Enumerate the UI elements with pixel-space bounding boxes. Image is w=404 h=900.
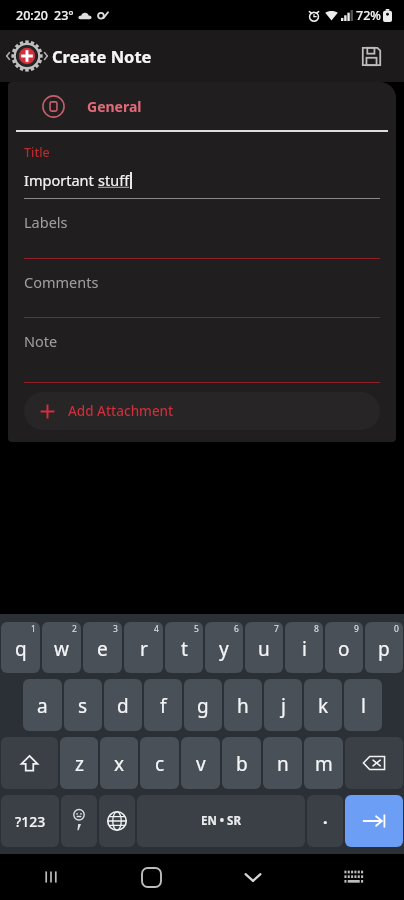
- button[interactable]: v: [181, 737, 220, 789]
- button[interactable]: s: [64, 679, 102, 731]
- staticText: Create Note: [52, 45, 152, 67]
- staticText: p: [378, 636, 390, 662]
- staticText: n: [277, 751, 289, 777]
- staticText: c: [155, 751, 165, 777]
- button[interactable]: Important: [24, 170, 380, 190]
- button[interactable]: Hide keyboard: [202, 854, 303, 900]
- button[interactable]: i: [285, 622, 323, 673]
- staticText: stuff: [98, 170, 130, 190]
- staticText: v: [196, 751, 206, 777]
- button[interactable]: h: [224, 679, 262, 731]
- staticText: Labels: [24, 212, 68, 232]
- button[interactable]: Emoji and comma: [61, 795, 97, 847]
- button[interactable]: r: [124, 622, 163, 673]
- staticText: .: [323, 807, 328, 829]
- staticText: m: [315, 751, 333, 777]
- staticText: 5: [194, 623, 199, 635]
- button[interactable]: Change language: [99, 795, 135, 847]
- button[interactable]: k: [304, 679, 342, 731]
- button[interactable]: e: [83, 622, 122, 673]
- button[interactable]: x: [100, 737, 138, 789]
- button[interactable]: .: [307, 795, 343, 847]
- button[interactable]: j: [264, 679, 302, 731]
- button[interactable]: Labels: [24, 199, 380, 259]
- staticText: Title: [24, 144, 50, 161]
- staticText: Add Attachment: [68, 402, 174, 420]
- staticText: Important: [24, 170, 98, 190]
- staticText: z: [75, 751, 84, 777]
- staticText: 0: [394, 623, 399, 635]
- button[interactable]: General: [8, 82, 396, 130]
- staticText: a: [37, 693, 48, 719]
- staticText: b: [236, 751, 248, 777]
- staticText: General: [87, 97, 142, 116]
- button[interactable]: Comments: [24, 259, 380, 318]
- button[interactable]: l: [344, 679, 382, 731]
- staticText: Note: [24, 331, 58, 351]
- staticText: ?123: [15, 812, 46, 831]
- staticText: h: [237, 693, 249, 719]
- button[interactable]: q: [1, 622, 40, 673]
- staticText: q: [15, 636, 27, 662]
- button[interactable]: b: [222, 737, 261, 789]
- button[interactable]: ?123: [1, 795, 59, 847]
- button[interactable]: d: [104, 679, 142, 731]
- button[interactable]: Next field: [345, 795, 403, 847]
- staticText: t: [181, 636, 188, 662]
- button[interactable]: Add Attachment: [24, 392, 380, 430]
- staticText: o: [338, 636, 350, 662]
- button[interactable]: p: [365, 622, 403, 673]
- staticText: j: [281, 693, 286, 719]
- staticText: k: [318, 693, 329, 719]
- button[interactable]: Note: [24, 318, 380, 383]
- staticText: g: [197, 693, 209, 719]
- staticText: r: [140, 636, 148, 662]
- staticText: 8: [314, 623, 319, 635]
- staticText: 23°: [54, 7, 74, 24]
- button[interactable]: u: [245, 622, 283, 673]
- button[interactable]: Create Note: [8, 35, 154, 77]
- staticText: EN • SR: [201, 813, 241, 829]
- staticText: w: [54, 636, 69, 662]
- staticText: u: [258, 636, 270, 662]
- button[interactable]: o: [325, 622, 363, 673]
- staticText: l: [361, 693, 366, 719]
- button[interactable]: Recent apps: [0, 854, 101, 900]
- button[interactable]: z: [60, 737, 98, 789]
- button[interactable]: c: [140, 737, 179, 789]
- staticText: 1: [31, 623, 36, 635]
- button[interactable]: Save note: [352, 37, 390, 75]
- staticText: d: [117, 693, 129, 719]
- staticText: 72%: [356, 7, 381, 24]
- staticText: 6: [234, 623, 239, 635]
- button[interactable]: Space: [137, 795, 305, 847]
- button[interactable]: Home: [101, 854, 202, 900]
- staticText: i: [302, 636, 307, 662]
- staticText: 2: [72, 623, 77, 635]
- button[interactable]: m: [304, 737, 343, 789]
- staticText: 3: [113, 623, 118, 635]
- button[interactable]: a: [23, 679, 62, 731]
- staticText: x: [114, 751, 125, 777]
- staticText: s: [78, 693, 88, 719]
- button[interactable]: g: [184, 679, 222, 731]
- staticText: 4: [154, 623, 159, 635]
- button[interactable]: Switch keyboard: [303, 854, 404, 900]
- staticText: 20:20: [16, 7, 49, 24]
- button[interactable]: n: [263, 737, 302, 789]
- button[interactable]: w: [42, 622, 81, 673]
- staticText: e: [97, 636, 108, 662]
- button[interactable]: t: [165, 622, 203, 673]
- staticText: 7: [274, 623, 279, 635]
- staticText: 9: [354, 623, 359, 635]
- button[interactable]: f: [144, 679, 182, 731]
- staticText: Comments: [24, 272, 99, 292]
- button[interactable]: Shift: [1, 737, 58, 789]
- staticText: f: [160, 693, 167, 719]
- button[interactable]: Backspace: [345, 737, 403, 789]
- button[interactable]: y: [205, 622, 243, 673]
- staticText: y: [219, 636, 229, 662]
